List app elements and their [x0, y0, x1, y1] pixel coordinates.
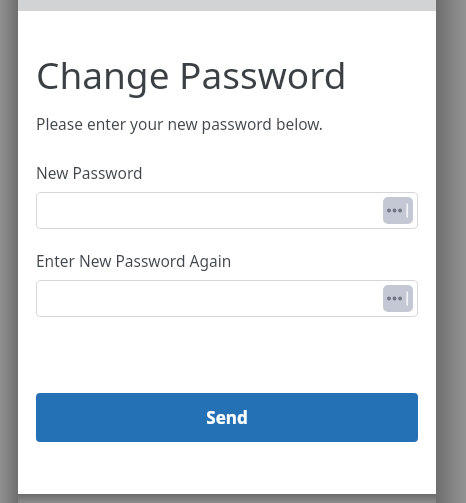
button[interactable]: New password entry: [36, 192, 418, 229]
staticText: Change Password: [36, 49, 347, 99]
staticText: Send: [206, 406, 248, 429]
button[interactable]: Show password: [383, 285, 413, 312]
button[interactable]: Send: [36, 393, 418, 442]
staticText: Enter New Password Again: [36, 250, 232, 271]
button[interactable]: Show password: [383, 197, 413, 224]
staticText: New Password: [36, 162, 143, 183]
button[interactable]: Confirm new password entry: [36, 280, 418, 317]
staticText: Please enter your new password below.: [36, 113, 323, 134]
